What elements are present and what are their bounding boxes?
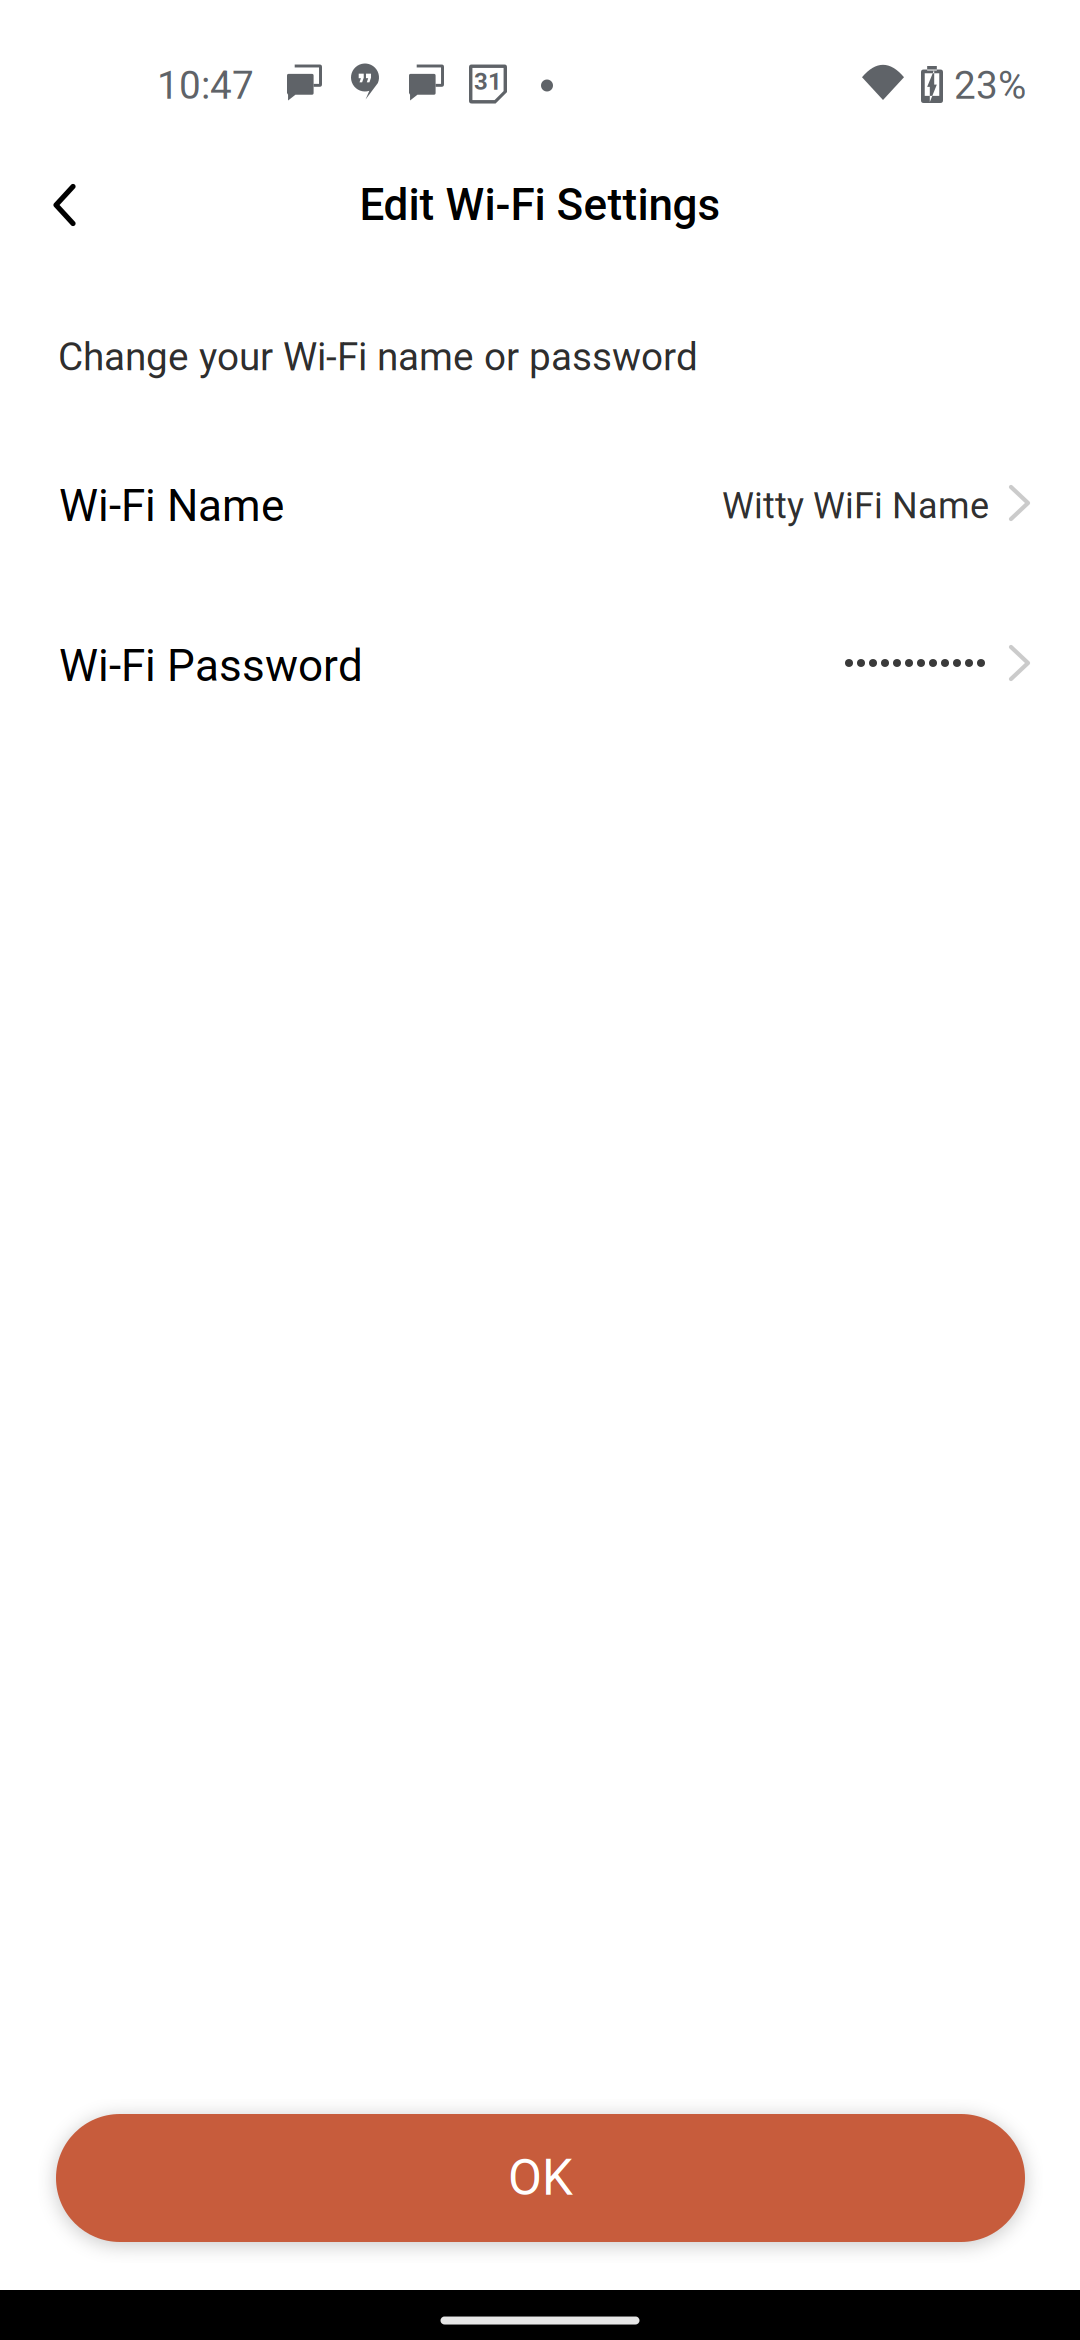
staticText: 10:47 bbox=[157, 63, 254, 108]
button[interactable]: OK bbox=[56, 2114, 1025, 2242]
staticText: Witty WiFi Name bbox=[722, 485, 989, 527]
staticText: Change your Wi-Fi name or password bbox=[58, 334, 698, 380]
staticText: Wi-Fi Name bbox=[59, 480, 284, 532]
button[interactable]: Wi-Fi Name bbox=[0, 426, 1080, 586]
button[interactable]: Wi-Fi Password bbox=[0, 586, 1080, 746]
staticText: OK bbox=[508, 2149, 573, 2207]
button[interactable]: Back bbox=[0, 149, 116, 260]
staticText: Edit Wi-Fi Settings bbox=[359, 179, 720, 231]
staticText: 23% bbox=[954, 63, 1026, 108]
staticText: Wi-Fi Password bbox=[59, 640, 363, 692]
staticText: 31 bbox=[474, 67, 502, 95]
